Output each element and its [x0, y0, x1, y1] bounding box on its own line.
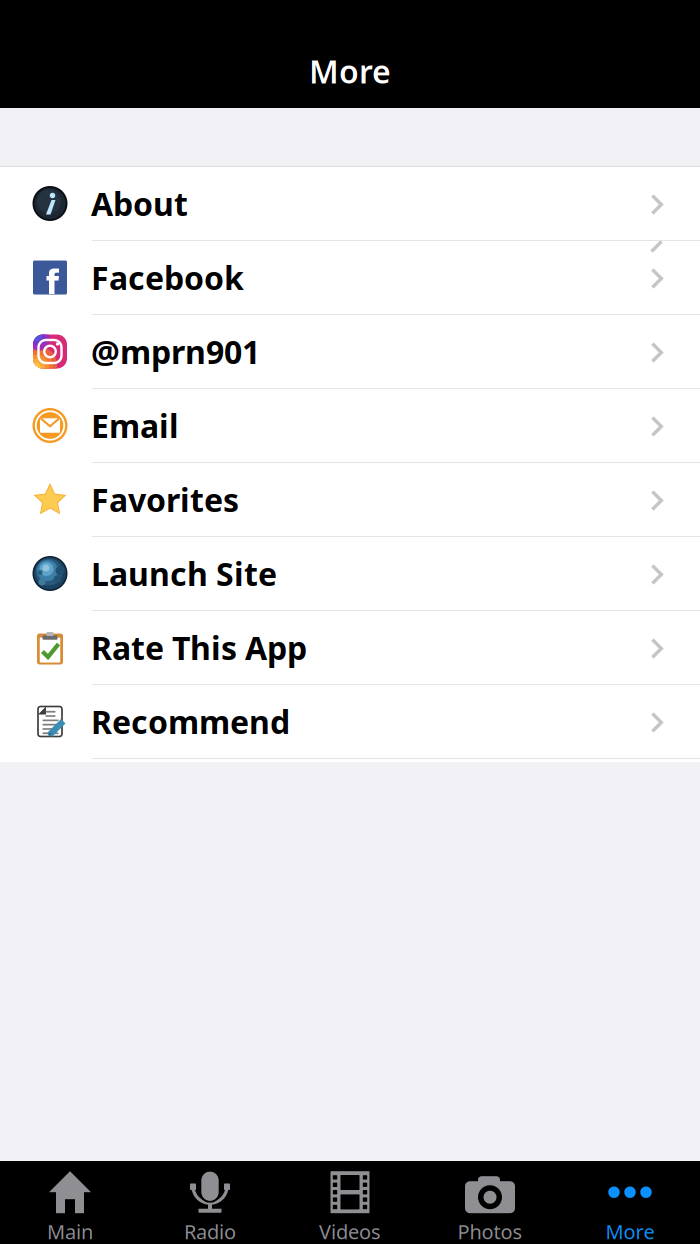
staticText: Rate This App — [91, 626, 307, 669]
button[interactable]: Photos — [420, 1161, 560, 1244]
button[interactable]: Recommend — [0, 685, 700, 759]
staticText: Facebook — [91, 256, 244, 299]
staticText: Photos — [457, 1218, 522, 1244]
button[interactable]: Email — [0, 389, 700, 463]
staticText: Favorites — [91, 478, 239, 521]
button[interactable]: Main — [0, 1161, 140, 1244]
button[interactable]: @mprn901 — [0, 315, 700, 389]
button[interactable]: Rate This App — [0, 611, 700, 685]
button[interactable]: Radio — [140, 1161, 280, 1244]
staticText: About — [91, 182, 188, 225]
staticText: Radio — [184, 1218, 236, 1244]
staticText: Email — [91, 404, 179, 447]
staticText: Launch Site — [91, 552, 277, 595]
staticText: @mprn901 — [91, 330, 260, 373]
staticText: Videos — [319, 1218, 381, 1244]
button[interactable]: About — [0, 167, 700, 241]
button[interactable]: Launch Site — [0, 537, 700, 611]
button[interactable]: Favorites — [0, 463, 700, 537]
button[interactable]: Facebook — [0, 241, 700, 315]
button[interactable]: More — [560, 1161, 700, 1244]
staticText: More — [309, 50, 391, 92]
staticText: Main — [47, 1218, 93, 1244]
staticText: Recommend — [91, 700, 290, 743]
button[interactable]: Videos — [280, 1161, 420, 1244]
staticText: More — [605, 1218, 654, 1244]
